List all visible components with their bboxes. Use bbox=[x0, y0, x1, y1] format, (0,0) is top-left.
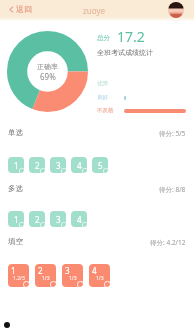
staticText: zuoye bbox=[83, 5, 105, 16]
staticText: 2 bbox=[38, 265, 43, 276]
button[interactable]: 4 bbox=[71, 157, 87, 173]
staticText: 4 bbox=[77, 160, 82, 171]
staticText: 正确率 bbox=[37, 62, 58, 71]
button[interactable]: 1 bbox=[8, 264, 29, 287]
staticText: 1.2/3 bbox=[13, 275, 25, 282]
button[interactable]: 3 bbox=[50, 211, 66, 227]
staticText: 1 bbox=[11, 265, 16, 276]
staticText: 全班考试成绩统计 bbox=[97, 48, 153, 57]
staticText: 总分 bbox=[97, 34, 110, 42]
button[interactable]: 1 bbox=[8, 211, 24, 227]
button[interactable]: Profile bbox=[168, 2, 184, 18]
staticText: 3 bbox=[56, 214, 61, 225]
button[interactable]: 2 bbox=[29, 211, 45, 227]
staticText: 优秀 bbox=[97, 80, 108, 87]
staticText: 得分: 5/5 bbox=[159, 129, 186, 138]
button[interactable]: 3 bbox=[62, 264, 83, 287]
staticText: 填空 bbox=[8, 237, 23, 246]
staticText: 1 bbox=[14, 160, 19, 171]
staticText: 不及格 bbox=[97, 107, 114, 114]
staticText: 2 bbox=[35, 160, 40, 171]
button[interactable]: 2 bbox=[29, 157, 45, 173]
staticText: 得分: 4.2/12 bbox=[150, 238, 186, 247]
staticText: 4 bbox=[92, 265, 97, 276]
staticText: 3 bbox=[65, 265, 70, 276]
button[interactable]: 5 bbox=[92, 157, 108, 173]
staticText: 良好 bbox=[97, 94, 108, 101]
staticText: 2 bbox=[35, 214, 40, 225]
button[interactable]: 1 bbox=[8, 157, 24, 173]
staticText: 多选 bbox=[8, 184, 23, 193]
button[interactable]: 返回 bbox=[7, 4, 33, 14]
staticText: 1 bbox=[14, 214, 19, 225]
staticText: 得分: 8/8 bbox=[159, 185, 186, 194]
button[interactable]: 3 bbox=[50, 157, 66, 173]
staticText: 5 bbox=[98, 160, 103, 171]
staticText: 返回 bbox=[16, 4, 32, 14]
staticText: 4 bbox=[77, 214, 82, 225]
button[interactable]: 4 bbox=[89, 264, 110, 287]
staticText: 69% bbox=[40, 71, 56, 82]
button[interactable]: 4 bbox=[71, 211, 87, 227]
staticText: 3 bbox=[56, 160, 61, 171]
staticText: 单选 bbox=[8, 128, 23, 137]
staticText: 17.2 bbox=[117, 27, 145, 46]
staticText: 1/3 bbox=[96, 275, 104, 282]
button[interactable]: 2 bbox=[35, 264, 56, 287]
staticText: 1/3 bbox=[69, 275, 77, 282]
staticText: 1/3 bbox=[42, 275, 50, 282]
